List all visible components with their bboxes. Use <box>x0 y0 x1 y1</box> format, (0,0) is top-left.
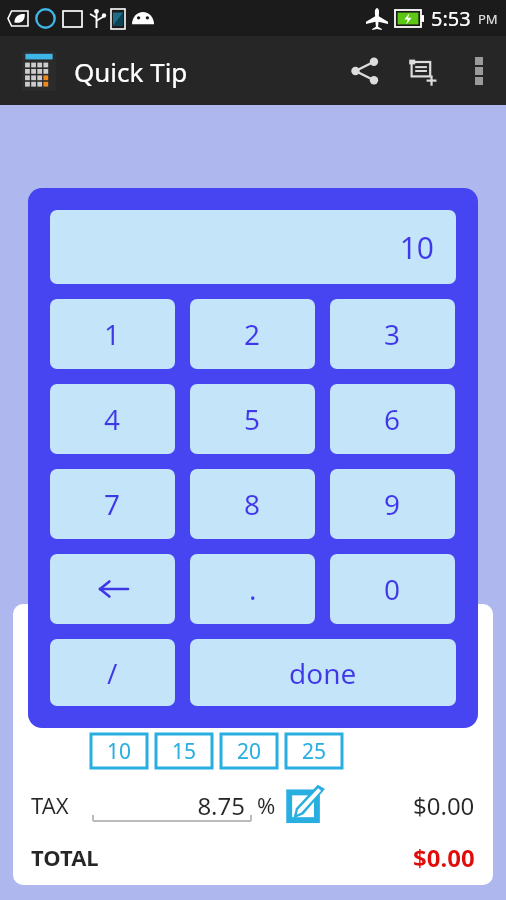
staticText: 5:53 <box>431 5 471 32</box>
button[interactable]: 10 <box>50 210 456 284</box>
staticText: Quick Tip <box>74 54 188 89</box>
button[interactable]: 20 <box>221 734 277 768</box>
button[interactable]: TIP <box>13 678 493 716</box>
staticText: TOTAL <box>31 842 99 872</box>
staticText: 6 <box>384 400 401 438</box>
staticText: $0.00 <box>413 681 475 714</box>
staticText: $0.00 <box>413 841 475 874</box>
button[interactable]: 0 <box>330 554 455 624</box>
button[interactable]: 15 <box>156 734 212 768</box>
button[interactable]: More options <box>452 44 506 98</box>
staticText: 10 <box>50 227 434 268</box>
staticText: 8 <box>244 485 261 523</box>
button[interactable]: 10 <box>91 734 147 768</box>
staticText: 8.75 <box>69 789 245 822</box>
staticText: SUBTOTAL <box>31 622 141 652</box>
staticText: 9 <box>384 485 401 523</box>
staticText: TAX <box>31 790 69 820</box>
button[interactable]: 5 <box>190 384 315 454</box>
staticText: 5 <box>244 400 261 438</box>
staticText: 3 <box>384 315 401 353</box>
button[interactable]: 9 <box>330 469 455 539</box>
button[interactable]: Share <box>336 42 394 100</box>
staticText: $0.00 <box>413 789 475 822</box>
staticText: done <box>289 654 357 692</box>
button[interactable]: 8.75 <box>69 785 251 825</box>
button[interactable]: SUBTOTAL <box>13 618 493 656</box>
button[interactable]: New tab <box>394 42 452 100</box>
staticText: 25 <box>302 737 327 766</box>
staticText: 20 <box>237 737 262 766</box>
button[interactable]: TOTAL <box>13 838 493 876</box>
staticText: . <box>249 570 257 608</box>
staticText: 1 <box>104 315 121 353</box>
staticText: 0 <box>384 570 401 608</box>
staticText: 7 <box>104 485 121 523</box>
staticText: 2 <box>244 315 261 353</box>
button[interactable]: 8 <box>190 469 315 539</box>
staticText: 4 <box>104 400 121 438</box>
staticText: % <box>257 790 276 820</box>
button[interactable]: Edit tax <box>284 783 328 827</box>
button[interactable]: 7 <box>50 469 175 539</box>
button[interactable]: . <box>190 554 315 624</box>
button[interactable]: 1 <box>50 299 175 369</box>
staticText: 15 <box>172 737 197 766</box>
staticText: $0.00 <box>413 621 475 654</box>
button[interactable]: Backspace <box>50 554 175 624</box>
button[interactable]: 6 <box>330 384 455 454</box>
button[interactable]: 4 <box>50 384 175 454</box>
staticText: PM <box>478 10 498 28</box>
button[interactable]: 3 <box>330 299 455 369</box>
button[interactable]: done <box>190 639 456 706</box>
button[interactable]: 25 <box>286 734 342 768</box>
staticText: / <box>107 654 118 692</box>
button[interactable]: 2 <box>190 299 315 369</box>
button[interactable]: / <box>50 639 175 706</box>
staticText: TIP <box>31 682 66 712</box>
staticText: 10 <box>107 737 132 766</box>
